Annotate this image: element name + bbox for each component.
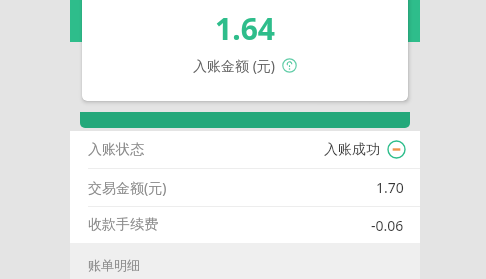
staticText: 入账状态	[88, 141, 144, 159]
button[interactable]: 帮助说明	[282, 58, 297, 73]
staticText: 1.64	[215, 8, 275, 49]
button[interactable]: 1.64	[82, 0, 408, 101]
button[interactable]: 入账状态	[70, 131, 420, 168]
button[interactable]: 收款手续费	[70, 207, 420, 243]
staticText: 入账成功	[324, 141, 380, 159]
staticText: 收款手续费	[88, 216, 158, 234]
button[interactable]: 交易金额(元)	[70, 169, 420, 206]
staticText: 交易金额(元)	[88, 178, 167, 197]
button[interactable]: 状态说明	[387, 140, 406, 159]
staticText: 1.70	[376, 178, 404, 197]
staticText: -0.06	[371, 216, 404, 235]
staticText: 账单明细	[88, 257, 140, 273]
staticText: 入账金额 (元)	[193, 56, 276, 75]
